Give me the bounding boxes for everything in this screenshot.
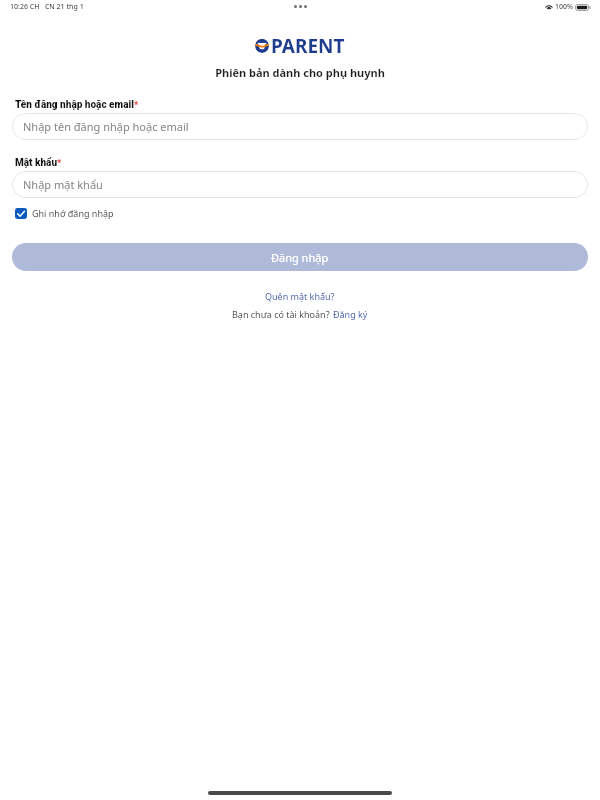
other: Battery full: [575, 4, 591, 11]
button[interactable]: Quên mật khẩu?: [263, 290, 337, 302]
button[interactable]: Ghi nhớ đăng nhập: [12, 204, 117, 222]
staticText: Đăng nhập: [271, 250, 329, 265]
button[interactable]: Đăng ký: [330, 308, 368, 320]
staticText: 10:26 CH CN 21 thg 1: [10, 2, 84, 12]
staticText: Tên đăng nhập hoặc email*: [15, 99, 139, 111]
button[interactable]: Nhập mật khẩu: [12, 171, 588, 198]
staticText: Nhập tên đăng nhập hoặc email: [23, 119, 189, 134]
staticText: Bạn chưa có tài khoản?: [232, 308, 330, 320]
button[interactable]: Đăng nhập: [12, 243, 588, 271]
staticText: Ghi nhớ đăng nhập: [32, 207, 114, 219]
staticText: 100%: [555, 2, 573, 12]
button[interactable]: Nhập tên đăng nhập hoặc email: [12, 113, 588, 140]
staticText: Nhập mật khẩu: [23, 177, 103, 192]
other: Wi-Fi signal: [545, 4, 553, 10]
staticText: Đăng ký: [333, 308, 368, 320]
staticText: PARENT: [271, 33, 345, 59]
staticText: Mật khẩu*: [15, 157, 62, 169]
staticText: Phiên bản dành cho phụ huynh: [0, 65, 600, 80]
